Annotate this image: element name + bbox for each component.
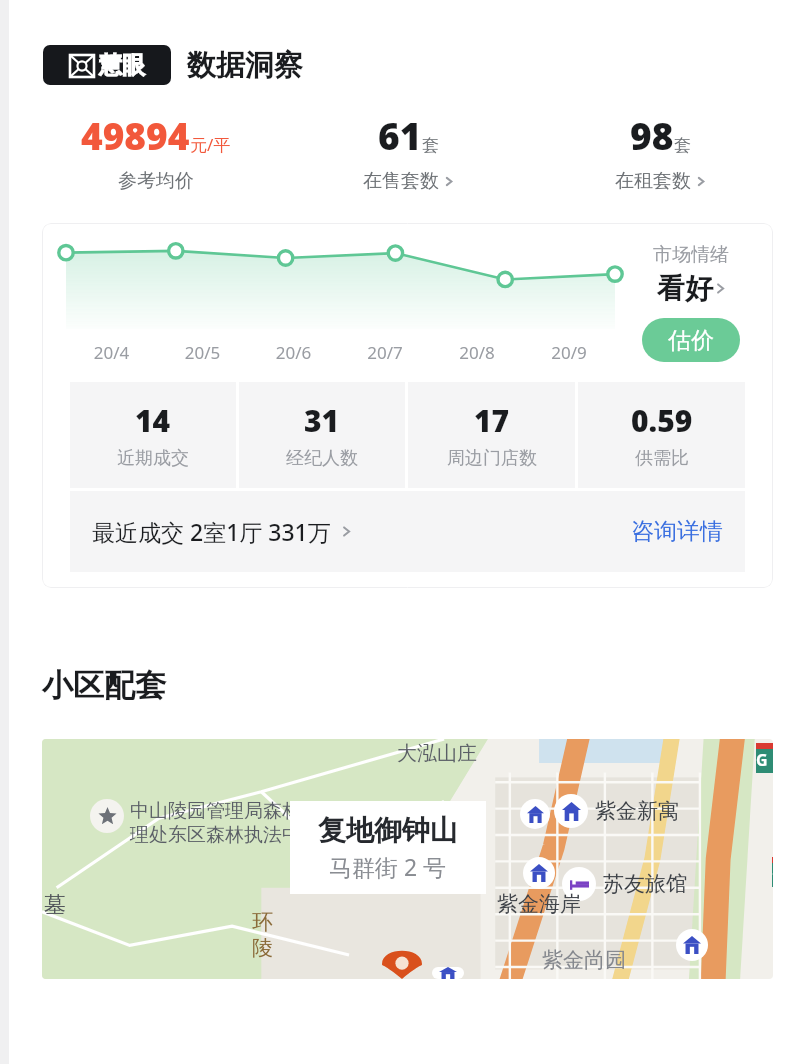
staticText: 数据洞察	[187, 47, 303, 84]
staticText: 墓	[44, 891, 66, 919]
button[interactable]: 98	[534, 110, 786, 193]
staticText: 61	[378, 110, 422, 160]
button[interactable]: 31	[239, 382, 405, 488]
button[interactable]: 49894	[29, 110, 282, 193]
staticText: G42	[756, 749, 773, 773]
staticText: 20/7	[339, 341, 431, 364]
staticText: 紫金海岸	[497, 891, 581, 917]
staticText: 市场情绪	[653, 243, 729, 267]
button[interactable]: 14	[70, 382, 236, 488]
staticText: 20/6	[248, 341, 339, 364]
staticText: 供需比	[635, 447, 689, 470]
staticText: 20/5	[157, 341, 248, 364]
staticText: 理处东区森林执法中	[130, 823, 301, 847]
staticText: 马群街 2 号	[329, 851, 447, 882]
staticText: 周边门店数	[447, 447, 537, 470]
staticText: 经纪人数	[286, 447, 358, 470]
staticText: 套	[422, 135, 439, 156]
staticText: 17	[474, 400, 510, 441]
staticText: 元/平	[190, 133, 231, 156]
staticText: 苏友旅馆	[603, 871, 687, 897]
staticText: 慧眼	[99, 51, 145, 80]
staticText: 最近成交 2室1厅 331万	[92, 516, 331, 547]
staticText: 近期成交	[117, 447, 189, 470]
staticText: 98	[630, 110, 674, 160]
button[interactable]: 17	[408, 382, 575, 488]
staticText: 估价	[668, 326, 714, 355]
button[interactable]: 最近成交 2室1厅 331万	[70, 491, 745, 572]
staticText: 紫金尚园	[542, 947, 626, 973]
button[interactable]: Map of 复地御钟山	[42, 739, 773, 979]
staticText: G4	[772, 863, 773, 887]
staticText: 复地御钟山	[318, 813, 458, 848]
button[interactable]: 看好	[657, 271, 726, 306]
staticText: 紫金新寓	[595, 798, 679, 824]
staticText: 0.59	[631, 400, 693, 441]
staticText: 大泓山庄	[397, 741, 477, 766]
staticText: 49894	[81, 110, 190, 160]
staticText: 参考均价	[118, 169, 194, 193]
staticText: 咨询详情	[631, 517, 723, 546]
staticText: 看好	[657, 271, 713, 306]
staticText: 20/8	[431, 341, 523, 364]
staticText: 中山陵园管理局森林管	[130, 799, 320, 823]
staticText: 环	[252, 909, 273, 935]
staticText: 套	[674, 135, 691, 156]
staticText: 陵	[252, 935, 273, 961]
staticText: 在租套数	[615, 169, 691, 193]
staticText: 14	[135, 400, 171, 441]
button[interactable]: 61	[282, 110, 534, 193]
staticText: 31	[304, 400, 340, 441]
staticText: 20/4	[66, 341, 157, 364]
staticText: 在售套数	[363, 169, 439, 193]
button[interactable]: 估价	[642, 318, 740, 362]
staticText: 小区配套	[42, 666, 166, 705]
button[interactable]: 0.59	[578, 382, 745, 488]
staticText: 20/9	[523, 341, 615, 364]
